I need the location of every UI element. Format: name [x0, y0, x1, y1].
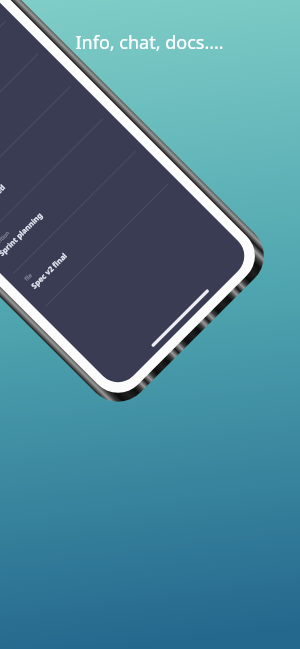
button[interactable]: Info, chat, docs onboarding page: [0, 0, 300, 649]
